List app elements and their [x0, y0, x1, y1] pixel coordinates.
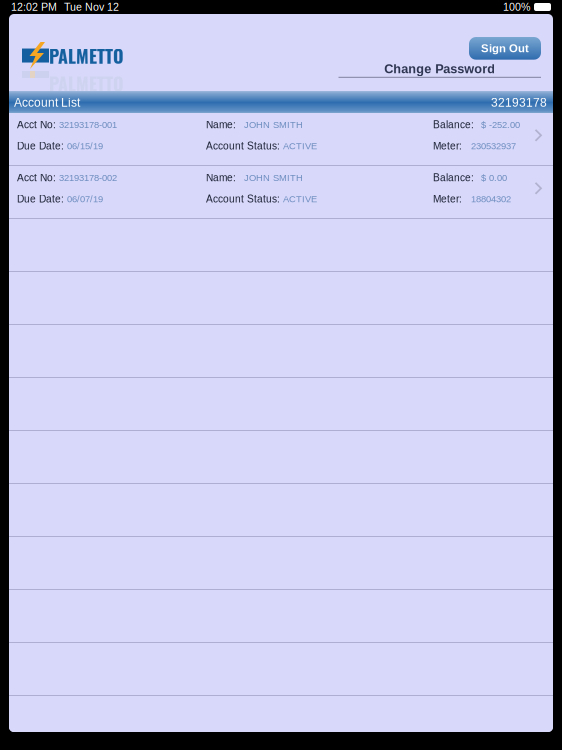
staticText: ACTIVE [283, 194, 317, 204]
button[interactable]: Sign Out [469, 37, 541, 60]
button[interactable]: Acct No: [9, 166, 553, 218]
staticText: 06/07/19 [67, 194, 103, 204]
staticText: JOHN SMITH [244, 119, 303, 130]
staticText: 100% [503, 1, 530, 13]
staticText: Tue Nov 12 [64, 1, 119, 13]
staticText: Balance: [433, 172, 474, 183]
staticText: 18804302 [471, 194, 511, 204]
staticText: $ -252.00 [481, 119, 520, 130]
staticText: 06/15/19 [67, 141, 103, 151]
staticText: Account Status: [206, 193, 280, 205]
staticText: Meter: [433, 140, 462, 152]
staticText: Due Date: [17, 193, 64, 205]
staticText: ACTIVE [283, 141, 317, 151]
staticText: Name: [206, 172, 236, 183]
button[interactable]: Acct No: [9, 113, 553, 165]
staticText: Meter: [433, 193, 462, 205]
staticText: PALMETTO [49, 70, 124, 97]
staticText: JOHN SMITH [244, 172, 303, 183]
button[interactable]: Change Password [338, 62, 541, 78]
staticText: 12:02 PM [11, 1, 57, 13]
staticText: Account List [14, 96, 80, 109]
staticText: 230532937 [471, 141, 516, 151]
staticText: 32193178-002 [59, 172, 117, 183]
staticText: Account Status: [206, 140, 280, 152]
staticText: Balance: [433, 119, 474, 130]
staticText: PALMETTO [49, 42, 124, 69]
staticText: Acct No: [17, 172, 56, 183]
staticText: Sign Out [481, 42, 529, 55]
staticText: Name: [206, 119, 236, 130]
staticText: Due Date: [17, 140, 64, 152]
staticText: Acct No: [17, 119, 56, 130]
staticText: 32193178-001 [59, 119, 117, 130]
staticText: 32193178 [491, 96, 547, 109]
staticText: Change Password [384, 62, 495, 76]
staticText: $ 0.00 [481, 172, 507, 183]
